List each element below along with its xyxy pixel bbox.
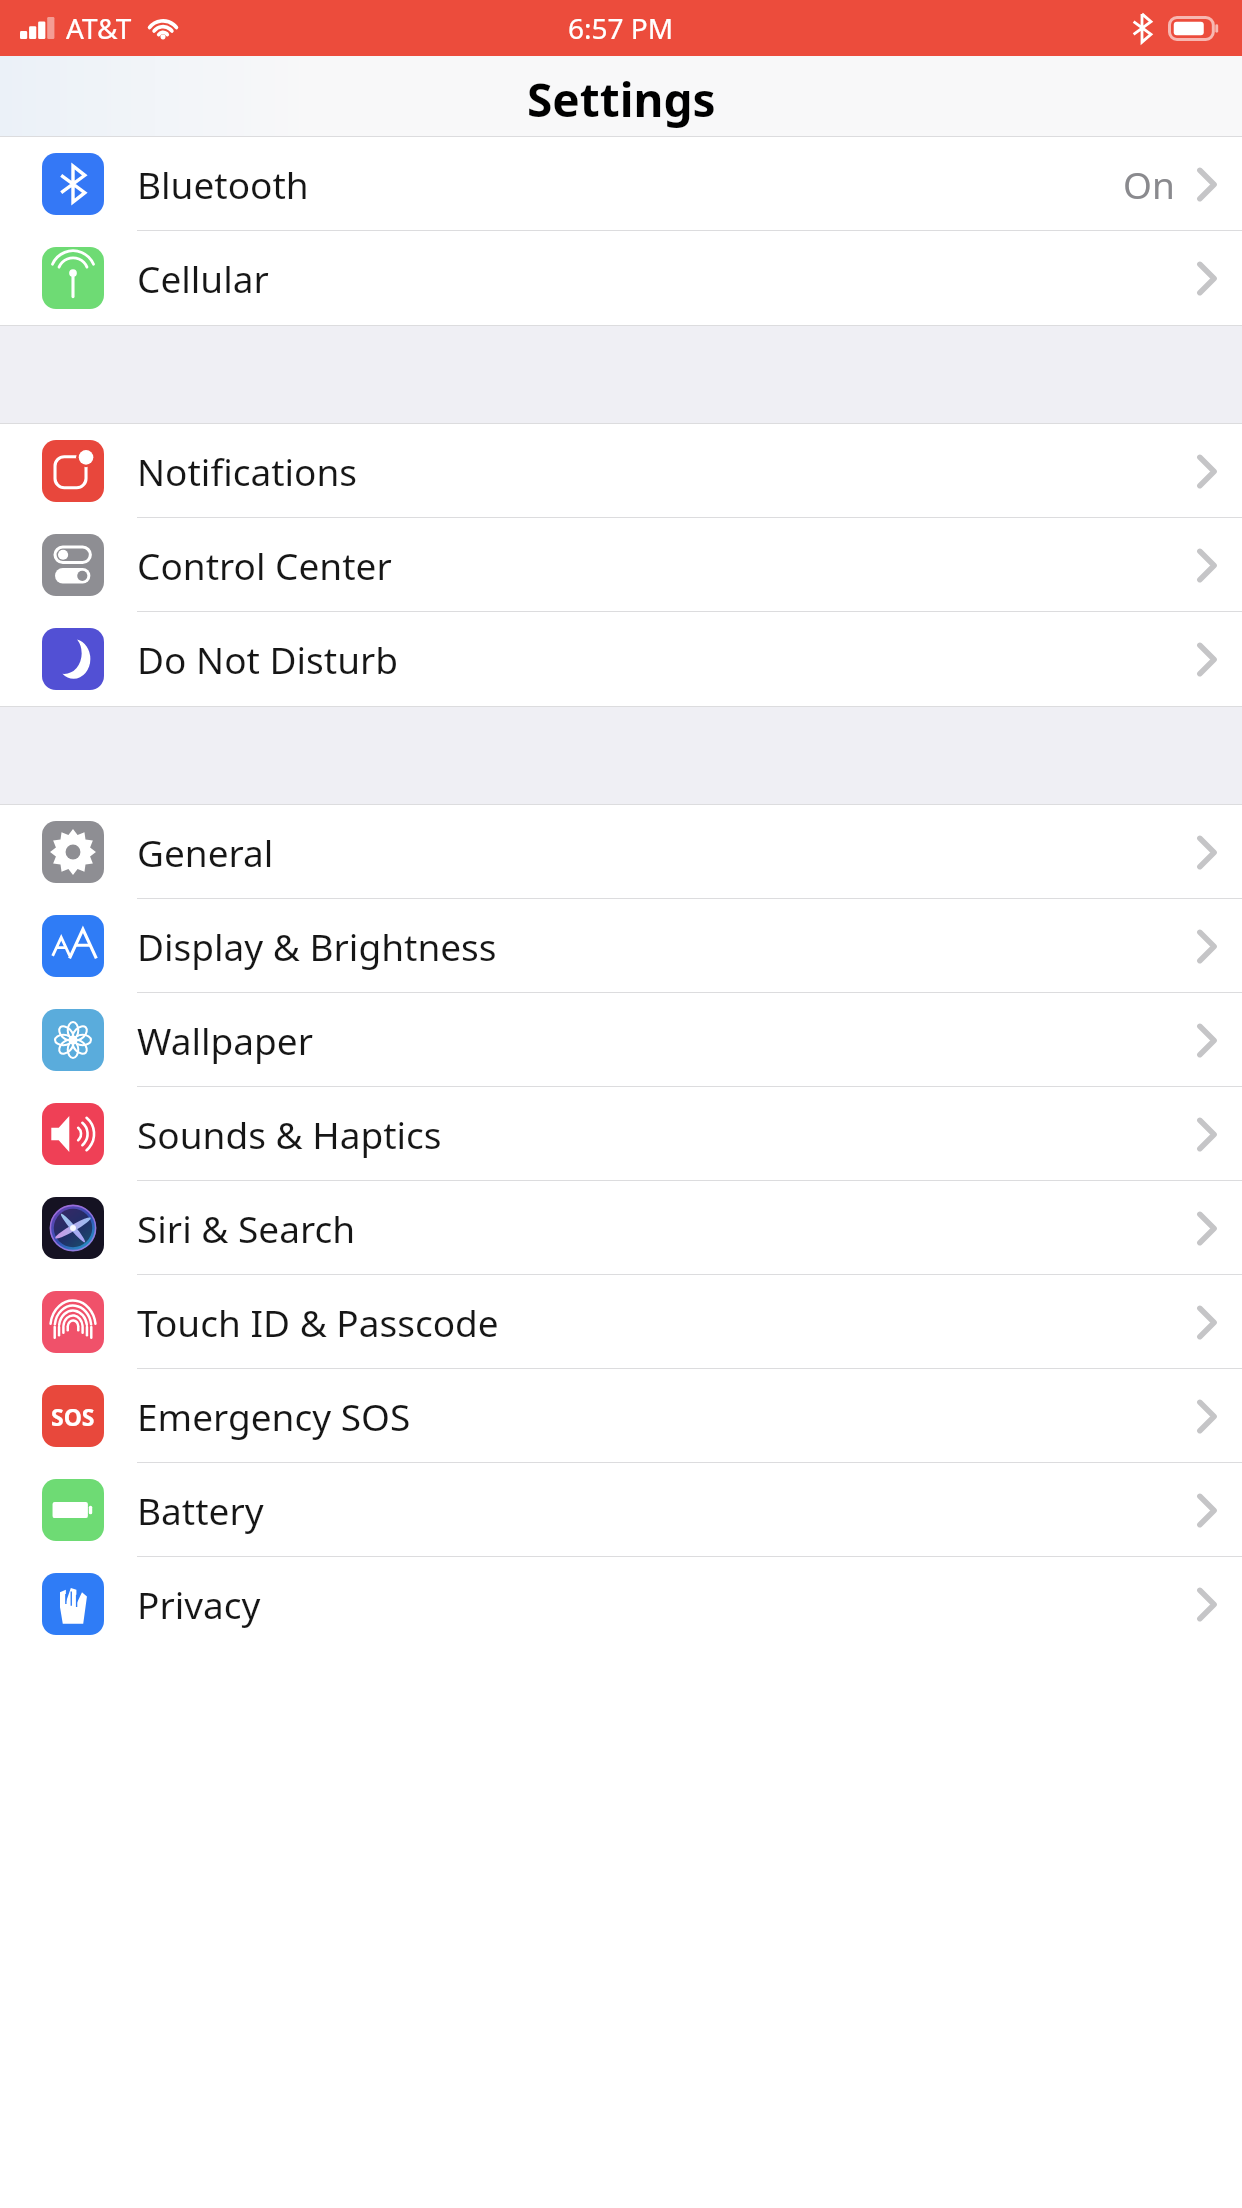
button[interactable]: Siri & Search <box>0 1181 1242 1275</box>
staticText: Cellular <box>137 253 269 303</box>
staticText: Wallpaper <box>137 1015 313 1065</box>
staticText: Siri & Search <box>137 1203 356 1253</box>
staticText: Display & Brightness <box>137 921 497 971</box>
button[interactable]: Display & Brightness <box>0 899 1242 993</box>
button[interactable]: Notifications <box>0 424 1242 518</box>
staticText: Privacy <box>137 1579 261 1629</box>
button[interactable]: Privacy <box>0 1557 1242 1651</box>
staticText: Touch ID & Passcode <box>137 1297 499 1347</box>
button[interactable]: Cellular <box>0 231 1242 325</box>
staticText: 6:57 PM <box>568 9 674 47</box>
button[interactable]: Control Center <box>0 518 1242 612</box>
staticText: AT&T <box>66 9 132 47</box>
button[interactable]: General <box>0 805 1242 899</box>
button[interactable]: Sounds & Haptics <box>0 1087 1242 1181</box>
staticText: Settings <box>527 68 716 131</box>
staticText: General <box>137 827 274 877</box>
staticText: Control Center <box>137 540 392 590</box>
button[interactable]: Battery <box>0 1463 1242 1557</box>
staticText: Battery <box>137 1485 264 1535</box>
button[interactable]: Bluetooth <box>0 137 1242 231</box>
staticText: Bluetooth <box>137 159 309 209</box>
button[interactable]: Wallpaper <box>0 993 1242 1087</box>
staticText: Do Not Disturb <box>137 634 399 684</box>
staticText: SOS <box>51 1401 95 1432</box>
button[interactable]: Do Not Disturb <box>0 612 1242 706</box>
staticText: Notifications <box>137 446 358 496</box>
staticText: On <box>1123 159 1175 209</box>
staticText: Sounds & Haptics <box>137 1109 442 1159</box>
button[interactable]: SOS <box>0 1369 1242 1463</box>
button[interactable]: Touch ID & Passcode <box>0 1275 1242 1369</box>
staticText: Emergency SOS <box>137 1391 411 1441</box>
